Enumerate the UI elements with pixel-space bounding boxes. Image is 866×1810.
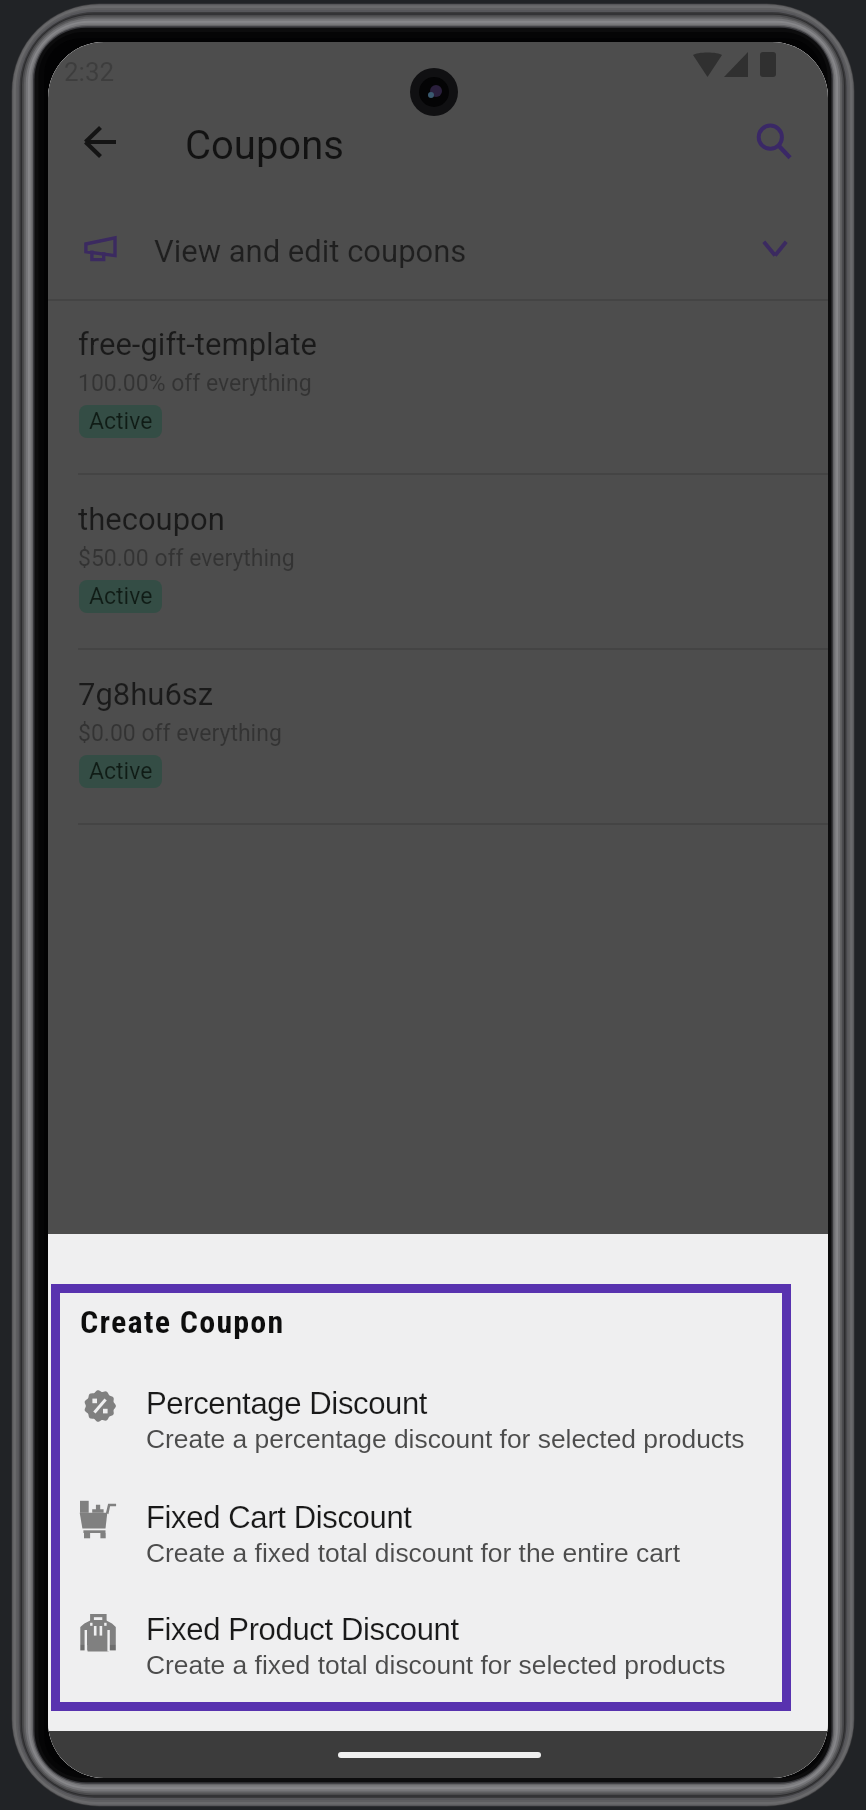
staticText: 100.00% off everything bbox=[78, 370, 312, 397]
button[interactable]: 7g8hu6sz bbox=[48, 650, 828, 825]
staticText: Fixed Product Discount bbox=[146, 1612, 459, 1647]
staticText: Fixed Cart Discount bbox=[146, 1500, 412, 1535]
staticText: 2:32 bbox=[64, 57, 115, 87]
staticText: 7g8hu6sz bbox=[78, 676, 214, 712]
button[interactable]: Fixed Cart Discount bbox=[60, 1496, 782, 1596]
staticText: Create a fixed total discount for select… bbox=[146, 1650, 726, 1679]
staticText: Create Coupon bbox=[80, 1303, 285, 1341]
staticText: thecoupon bbox=[78, 501, 225, 537]
button[interactable]: thecoupon bbox=[48, 475, 828, 650]
staticText: Active bbox=[89, 583, 153, 610]
staticText: free-gift-template bbox=[78, 326, 318, 362]
staticText: Active bbox=[89, 408, 153, 435]
button[interactable]: Fixed Product Discount bbox=[60, 1608, 782, 1708]
staticText: View and edit coupons bbox=[154, 233, 467, 269]
staticText: Percentage Discount bbox=[146, 1386, 428, 1421]
staticText: $50.00 off everything bbox=[78, 545, 295, 572]
button[interactable]: free-gift-template bbox=[48, 300, 828, 475]
other: Percentage Discount bbox=[76, 1382, 124, 1430]
staticText: $0.00 off everything bbox=[78, 720, 282, 747]
button[interactable]: Search bbox=[743, 112, 807, 176]
staticText: Create a percentage discount for selecte… bbox=[146, 1424, 745, 1453]
staticText: Create a fixed total discount for the en… bbox=[146, 1538, 680, 1567]
staticText: Coupons bbox=[185, 122, 344, 169]
button[interactable]: Percentage Discount bbox=[60, 1382, 782, 1482]
other: Fixed Cart Discount bbox=[76, 1491, 124, 1539]
button[interactable]: Back bbox=[68, 112, 132, 176]
staticText: Active bbox=[89, 758, 153, 785]
button[interactable]: View and edit coupons bbox=[48, 200, 828, 298]
other: Fixed Product Discount bbox=[76, 1605, 124, 1653]
